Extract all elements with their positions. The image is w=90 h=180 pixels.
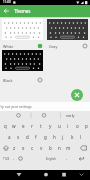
staticText: v <box>40 145 43 151</box>
staticText: i <box>67 123 69 129</box>
staticText: Black <box>3 78 13 83</box>
staticText: z <box>13 145 16 151</box>
staticText: g <box>44 134 47 140</box>
staticText: Gray <box>49 44 58 49</box>
staticText: d <box>26 134 29 140</box>
staticText: , <box>13 155 15 161</box>
staticText: r <box>31 123 33 129</box>
staticText: x <box>22 145 25 151</box>
staticText: s <box>17 134 20 140</box>
staticText: w <box>12 123 16 129</box>
staticText: English <box>46 157 56 161</box>
staticText: o <box>76 123 79 129</box>
staticText: n <box>58 145 61 151</box>
staticText: a <box>8 134 11 140</box>
staticText: y <box>49 123 52 129</box>
staticText: Try out your settings <box>0 104 32 108</box>
staticText: j <box>62 134 64 140</box>
staticText: f <box>35 134 37 140</box>
staticText: m <box>66 145 71 151</box>
staticText: ?123 <box>3 157 10 161</box>
staticText: b <box>49 145 52 151</box>
staticText: Themes <box>14 8 31 14</box>
staticText: q <box>4 123 7 129</box>
staticText: . <box>66 155 68 161</box>
staticText: t <box>40 123 42 129</box>
staticText: l <box>80 134 82 140</box>
staticText: u <box>58 123 61 129</box>
staticText: 11:00 <box>3 0 11 4</box>
staticText: early <box>66 113 75 118</box>
staticText: White <box>3 44 14 49</box>
staticText: e <box>22 123 25 129</box>
staticText: c <box>31 145 34 151</box>
staticText: p <box>85 123 88 129</box>
staticText: h <box>53 134 56 140</box>
staticText: k <box>71 134 74 140</box>
